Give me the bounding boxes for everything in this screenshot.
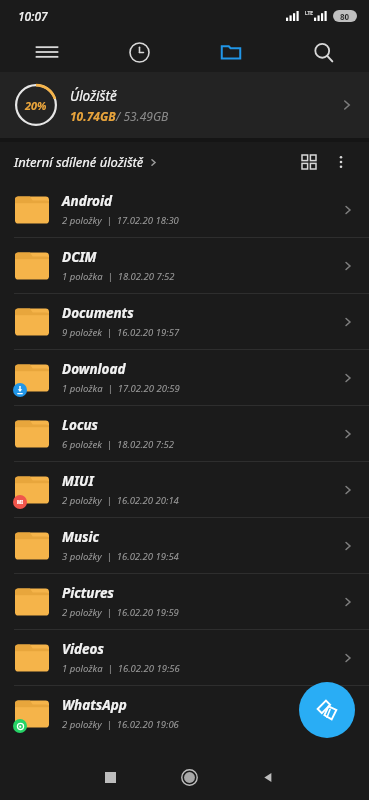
button[interactable]: Home (150, 755, 229, 800)
button[interactable]: Menu (0, 32, 93, 72)
staticText: Download (62, 360, 126, 378)
staticText: 6 položek | 18.02.20 7:52 (62, 438, 174, 451)
button[interactable]: Android (0, 182, 369, 237)
button[interactable]: Grid view (295, 148, 323, 176)
button[interactable]: Download (0, 350, 369, 405)
staticText: 1 položka | 18.02.20 7:52 (62, 270, 175, 283)
button[interactable]: WhatsApp (0, 686, 369, 741)
button[interactable]: Back (229, 755, 308, 800)
button[interactable]: 20% (0, 72, 369, 138)
staticText: 10.74GB (70, 108, 116, 124)
staticText: 2 položky | 16.02.20 20:14 (62, 494, 179, 507)
staticText: Locus (62, 416, 98, 434)
staticText: 2 položky | 17.02.20 18:30 (62, 214, 179, 227)
staticText: MIUI (62, 472, 94, 490)
button[interactable]: Search (277, 32, 369, 72)
staticText: 10:07 (18, 8, 48, 24)
staticText: 2 položky | 16.02.20 19:59 (62, 606, 179, 619)
staticText: 9 položek | 16.02.20 19:57 (62, 326, 180, 339)
staticText: Music (62, 528, 100, 546)
button[interactable]: Interní sdílené úložiště (14, 153, 159, 171)
staticText: / 53.49GB (116, 108, 169, 124)
staticText: 20% (25, 98, 47, 113)
staticText: Úložiště (70, 87, 117, 105)
staticText: 80 (340, 11, 350, 22)
button[interactable]: MI (0, 462, 369, 517)
button[interactable]: Locus (0, 406, 369, 461)
button[interactable]: Clean up storage (299, 682, 355, 738)
button[interactable]: More options (327, 148, 355, 176)
staticText: Documents (62, 304, 134, 322)
staticText: Videos (62, 640, 104, 658)
staticText: 2 položky | 16.02.20 19:06 (62, 718, 179, 731)
button[interactable]: Files (185, 32, 277, 72)
staticText: WhatsApp (62, 696, 127, 714)
button[interactable]: Recent (93, 32, 185, 72)
button[interactable]: Videos (0, 630, 369, 685)
staticText: Pictures (62, 584, 114, 602)
staticText: DCIM (62, 248, 97, 266)
button[interactable]: Documents (0, 294, 369, 349)
staticText: Android (62, 192, 113, 210)
button[interactable]: DCIM (0, 238, 369, 293)
staticText: 1 položka | 16.02.20 19:56 (62, 662, 180, 675)
button[interactable]: Music (0, 518, 369, 573)
button[interactable]: Pictures (0, 574, 369, 629)
staticText: 3 položky | 16.02.20 19:54 (62, 550, 179, 563)
staticText: MI (17, 499, 23, 505)
staticText: 1 položka | 17.02.20 20:59 (62, 382, 180, 395)
staticText: Interní sdílené úložiště (14, 153, 144, 171)
staticText: LTE (305, 10, 314, 17)
button[interactable]: Recents (71, 755, 150, 800)
